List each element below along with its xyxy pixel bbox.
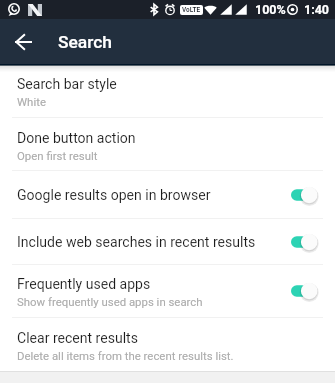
staticText: Include web searches in recent results [17,234,291,250]
button[interactable]: Search bar style [0,64,335,117]
button[interactable]: Navigate up [0,19,46,64]
staticText: Frequently used apps [17,276,151,292]
button[interactable]: Frequently used apps [0,265,335,317]
staticText: Open first result [17,149,98,162]
staticText: Delete all items from the recent results… [17,349,234,362]
button[interactable]: Done button action [0,118,335,170]
staticText: Show frequently used apps in search [17,295,203,308]
staticText: White [17,95,46,108]
staticText: 1:40 [304,2,330,17]
staticText: Google results open in browser [17,187,291,203]
staticText: Clear recent results [17,330,138,346]
staticText: Search bar style [17,76,117,92]
staticText: Search [58,32,112,52]
button[interactable]: Google results open in browser [0,171,335,218]
staticText: Done button action [17,130,136,146]
staticText: 100% [255,2,286,17]
button[interactable]: Include web searches in recent results [0,219,335,264]
staticText: VoLTE [182,6,201,14]
button[interactable]: Clear recent results [0,318,335,371]
